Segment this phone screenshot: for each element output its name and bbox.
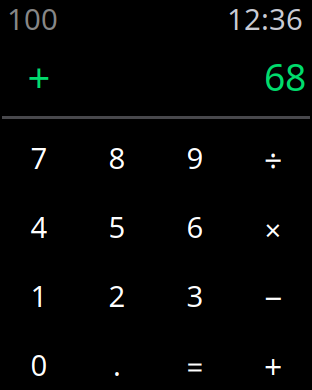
staticText: 1 xyxy=(30,276,47,315)
staticText: 68 xyxy=(264,52,306,101)
button[interactable]: 2 xyxy=(78,261,156,330)
button[interactable]: 8 xyxy=(78,123,156,192)
staticText: 0 xyxy=(30,345,47,384)
button[interactable]: 5 xyxy=(78,192,156,261)
staticText: = xyxy=(186,346,203,385)
staticText: × xyxy=(264,210,281,249)
staticText: 5 xyxy=(108,207,125,246)
button[interactable]: 4 xyxy=(0,192,78,261)
button[interactable]: Multiply xyxy=(234,192,312,261)
staticText: 8 xyxy=(108,138,125,177)
staticText: − xyxy=(264,276,282,319)
staticText: 2 xyxy=(108,276,125,315)
staticText: 4 xyxy=(30,207,47,246)
button[interactable]: . xyxy=(78,330,156,390)
button[interactable]: 6 xyxy=(156,192,234,261)
button[interactable]: 9 xyxy=(156,123,234,192)
staticText: + xyxy=(264,345,282,388)
button[interactable]: 1 xyxy=(0,261,78,330)
staticText: 100 xyxy=(7,0,58,38)
button[interactable]: 3 xyxy=(156,261,234,330)
button[interactable]: Add xyxy=(234,330,312,390)
button[interactable]: 0 xyxy=(0,330,78,390)
staticText: 3 xyxy=(186,276,203,315)
staticText: . xyxy=(113,345,121,384)
button[interactable]: Equals xyxy=(156,330,234,390)
staticText: ÷ xyxy=(264,139,282,181)
button[interactable]: 7 xyxy=(0,123,78,192)
staticText: + xyxy=(27,50,50,103)
button[interactable]: Divide xyxy=(234,123,312,192)
button[interactable]: Subtract xyxy=(234,261,312,330)
staticText: 12:36 xyxy=(227,0,303,38)
staticText: 7 xyxy=(30,138,47,177)
staticText: 6 xyxy=(186,207,203,246)
staticText: 9 xyxy=(186,138,203,177)
